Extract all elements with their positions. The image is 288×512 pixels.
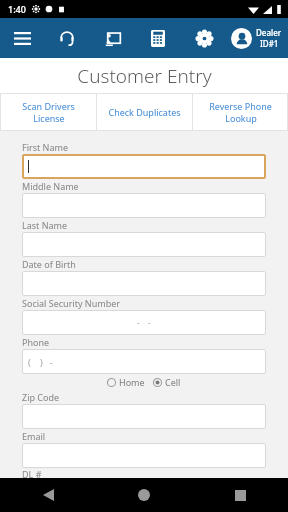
staticText: Phone [22, 336, 50, 348]
staticText: Email [22, 430, 46, 442]
button[interactable]: Home [96, 478, 192, 512]
staticText: License [33, 112, 65, 124]
button[interactable]: - - [22, 310, 266, 335]
button[interactable]: Support headset [44, 18, 89, 58]
staticText: Reverse Phone [209, 100, 272, 112]
staticText: Middle Name [22, 180, 79, 192]
button[interactable]: Home [107, 376, 145, 388]
button[interactable]: Check Duplicates [97, 93, 192, 131]
staticText: Last Name [22, 219, 68, 231]
button[interactable] [22, 271, 266, 296]
button[interactable]: Dealer [231, 18, 282, 58]
button[interactable]: Menu [0, 18, 44, 58]
staticText: Lookup [225, 112, 257, 124]
staticText: Scan Drivers [22, 100, 75, 112]
button[interactable] [22, 154, 266, 179]
button[interactable] [22, 193, 266, 218]
button[interactable]: Scan Drivers [0, 93, 96, 131]
staticText: ( ) - [28, 356, 53, 368]
staticText: Home [119, 376, 145, 388]
button[interactable] [22, 443, 266, 468]
staticText: Zip Code [22, 391, 60, 403]
button[interactable]: Cell [153, 376, 181, 388]
staticText: Check Duplicates [108, 106, 181, 118]
staticText: 1:40 [8, 3, 26, 15]
button[interactable]: Settings [181, 18, 227, 58]
button[interactable]: Recent apps [192, 478, 288, 512]
staticText: DL # [22, 468, 42, 478]
staticText: Customer Entry [77, 63, 212, 89]
button[interactable]: Calculator [135, 18, 181, 58]
staticText: Cell [165, 376, 181, 388]
staticText: Date of Birth [22, 258, 76, 270]
staticText: ID#1 [260, 38, 279, 49]
button[interactable]: Reverse Phone [193, 93, 288, 131]
staticText: Dealer [256, 27, 282, 38]
staticText: - - [137, 317, 151, 328]
button[interactable]: Presentation [89, 18, 135, 58]
button[interactable]: ( ) - [22, 349, 266, 374]
staticText: Social Security Number [22, 297, 121, 309]
staticText: First Name [22, 141, 68, 153]
button[interactable] [22, 232, 266, 257]
button[interactable]: Back [0, 478, 96, 512]
button[interactable] [22, 404, 266, 429]
